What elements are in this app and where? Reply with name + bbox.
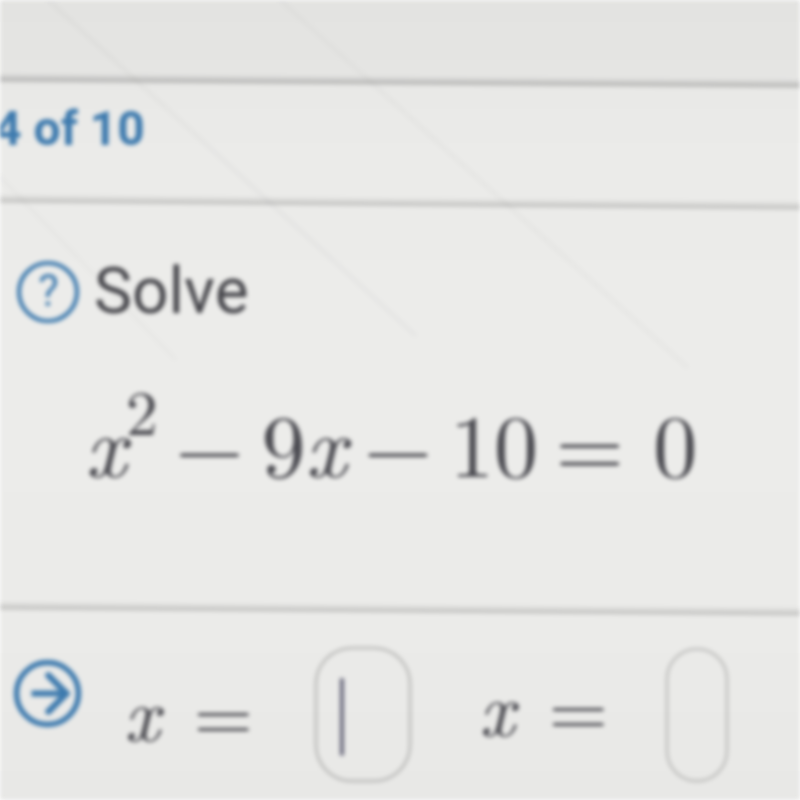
- button[interactable]: First answer field: [314, 646, 412, 783]
- button[interactable]: Submit answer: [14, 660, 81, 727]
- staticText: x =: [480, 650, 609, 758]
- button[interactable]: Second answer field: [665, 647, 729, 783]
- staticText: x =: [125, 655, 254, 763]
- staticText: Solve: [94, 254, 249, 329]
- staticText: x =: [479, 650, 608, 758]
- staticText: 4 of 10: [0, 100, 145, 156]
- staticText: ?: [38, 265, 59, 317]
- button[interactable]: Help: [14, 254, 249, 329]
- button[interactable]: 4 of 10: [0, 94, 151, 162]
- staticText: x2 − 9x − 10 = 0: [86, 364, 699, 502]
- other: Help: [14, 258, 82, 326]
- staticText: x2 − 9x − 10 = 0: [85, 364, 698, 502]
- staticText: x =: [124, 655, 253, 763]
